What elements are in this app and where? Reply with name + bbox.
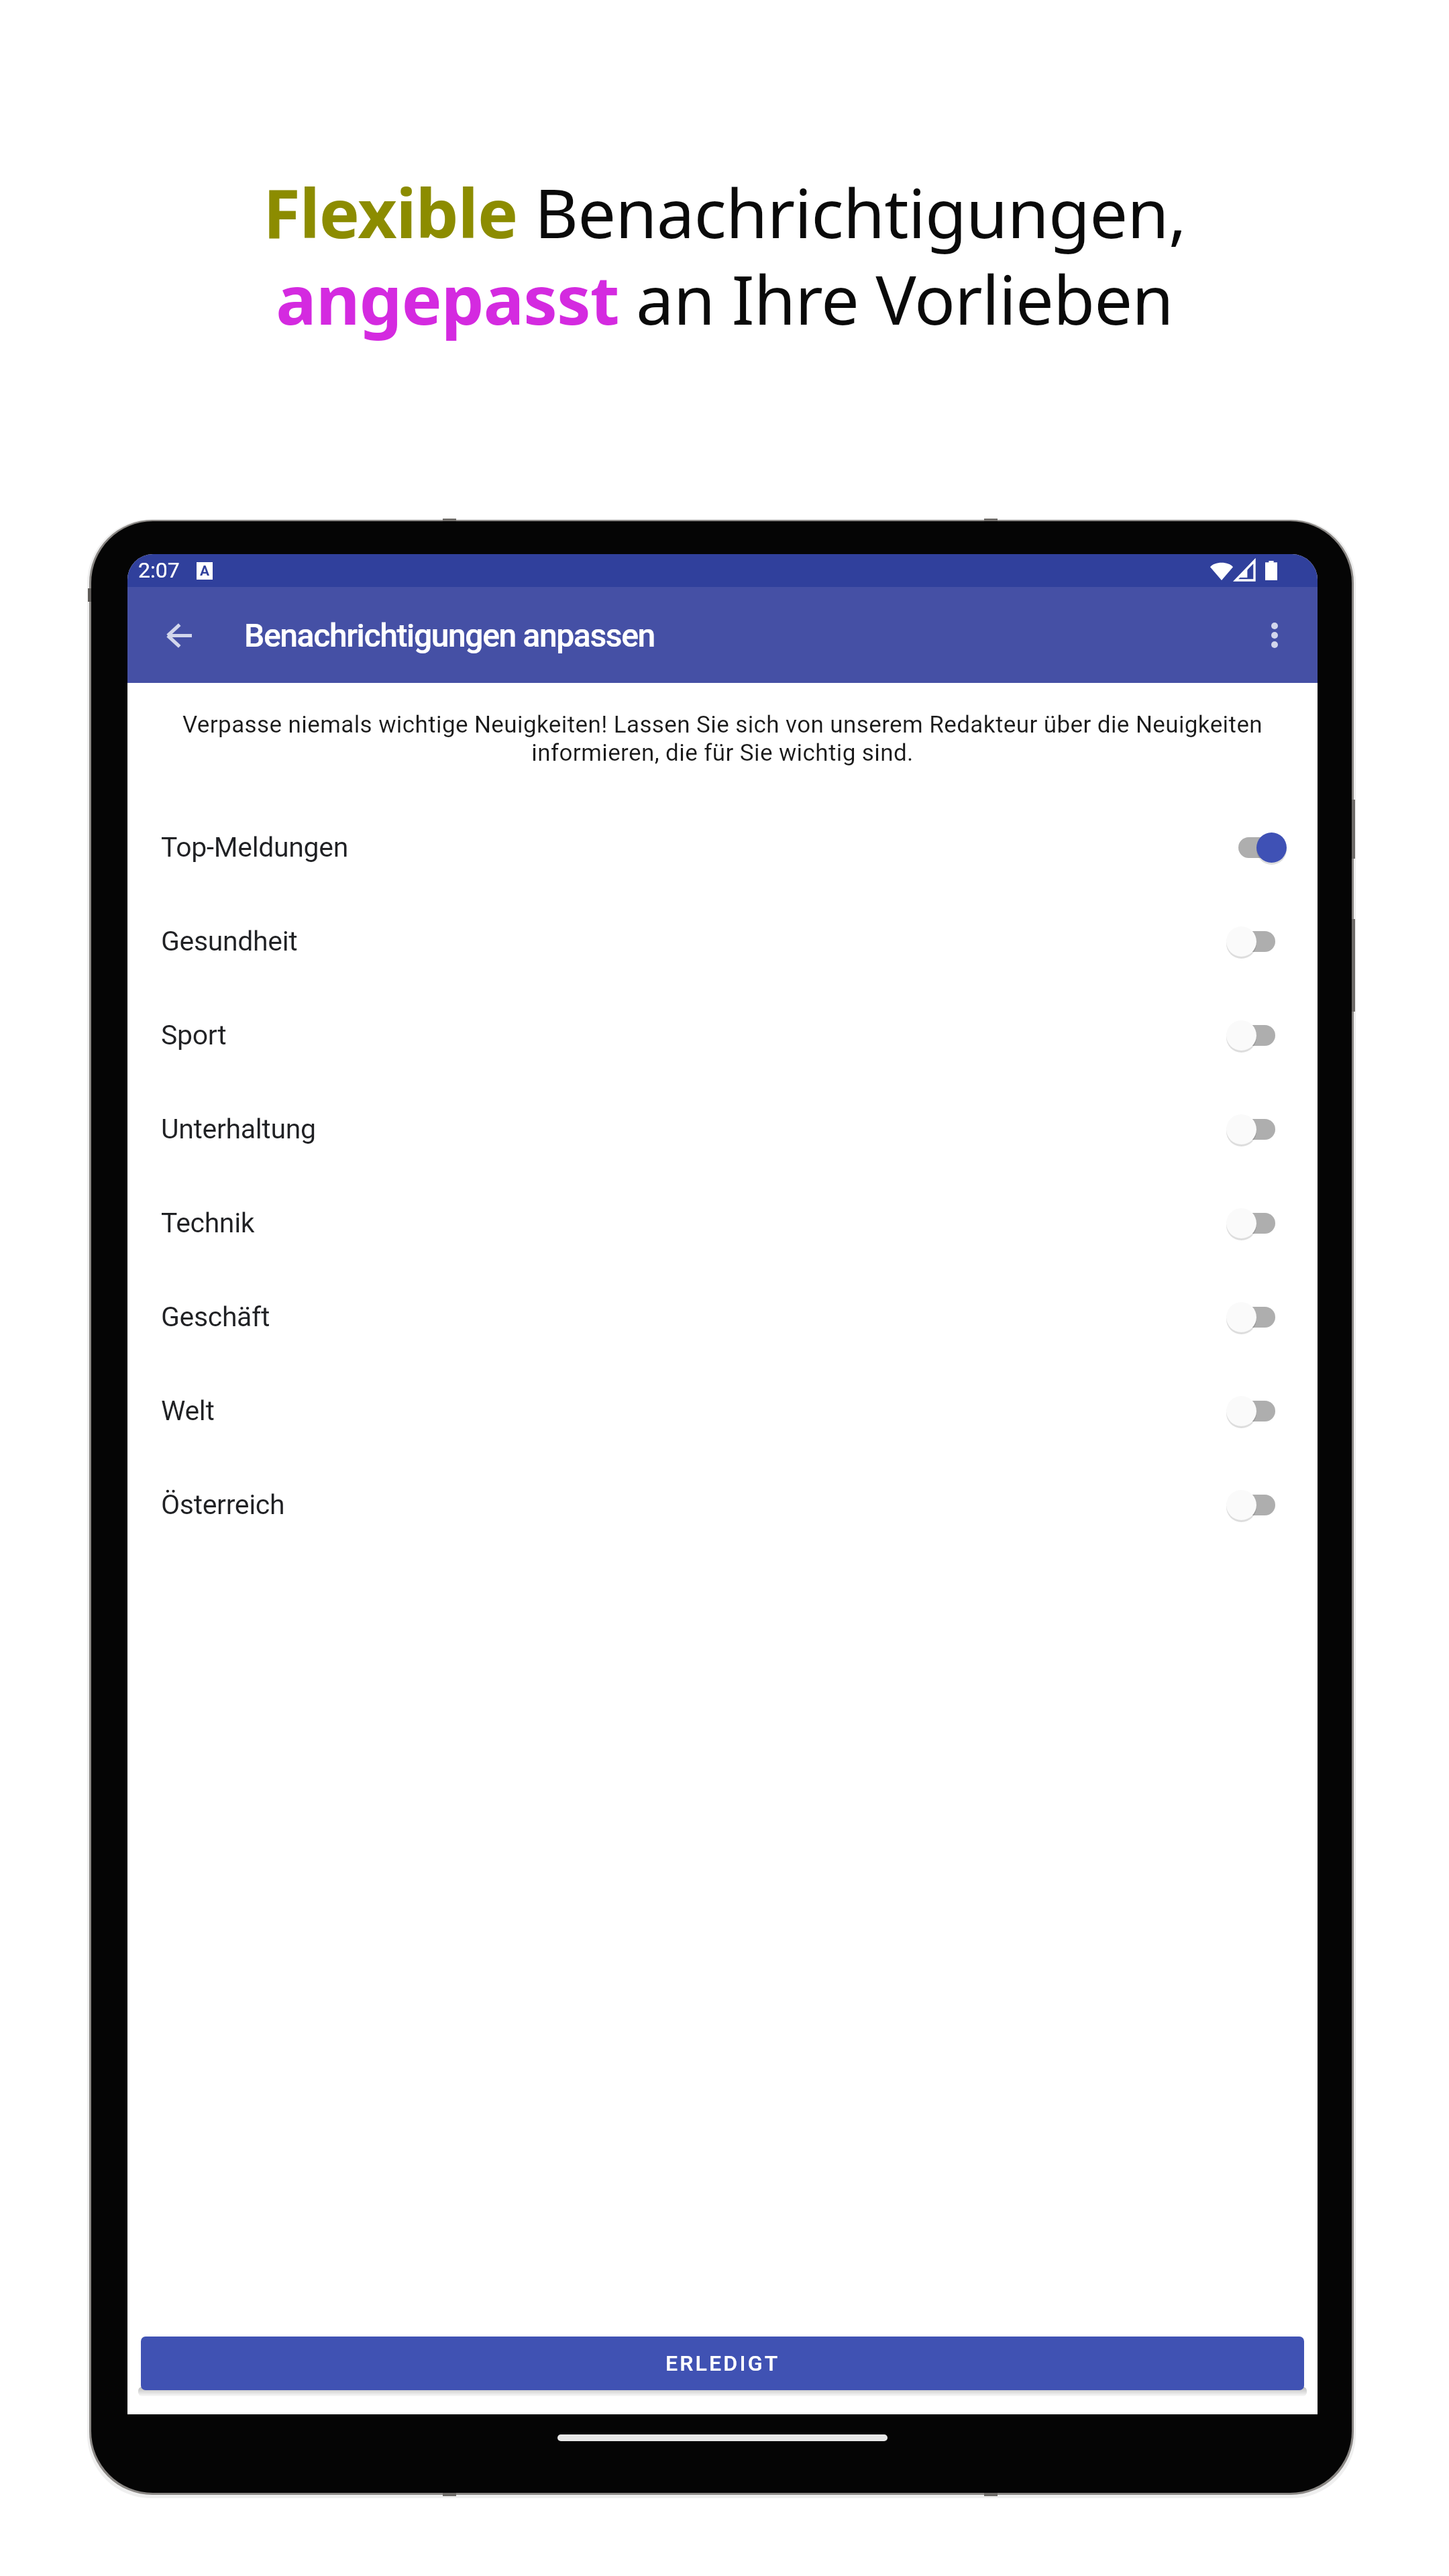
staticText: Unterhaltung [161,1113,316,1145]
button[interactable]: Sport aus [1226,1017,1287,1053]
button[interactable]: Top-Meldungen ein [1226,829,1287,865]
button[interactable]: Unterhaltung [127,1082,1318,1176]
staticText: Sport [161,1019,227,1051]
staticText: Flexible Benachrichtigungen, angepasst a… [0,166,1449,345]
staticText: Verpasse niemals wichtige Neuigkeiten! L… [174,711,1271,767]
staticText: Welt [161,1395,215,1427]
staticText: Gesundheit [161,925,298,957]
staticText: Top-Meldungen [161,831,348,863]
button[interactable]: Gesundheit [127,894,1318,988]
button[interactable]: Unterhaltung aus [1226,1111,1287,1147]
button[interactable]: Top-Meldungen [127,800,1318,894]
staticText: Benachrichtigungen anpassen [244,616,655,654]
button[interactable]: Technik [127,1176,1318,1270]
button[interactable]: Geschäft aus [1226,1299,1287,1335]
button[interactable]: Geschäft [127,1270,1318,1364]
button[interactable]: Österreich aus [1226,1487,1287,1523]
button[interactable]: Welt aus [1226,1393,1287,1429]
staticText: ERLEDIGT [665,2351,780,2376]
button[interactable]: Österreich [127,1458,1318,1552]
button[interactable]: Gesundheit aus [1226,923,1287,959]
button[interactable]: ERLEDIGT [141,2337,1304,2390]
button[interactable]: Weitere Optionen [1245,606,1304,665]
staticText: Geschäft [161,1301,270,1333]
button[interactable]: Sport [127,988,1318,1082]
button[interactable]: Zurück [150,606,209,665]
staticText: 2:07 [138,557,180,583]
staticText: Österreich [161,1489,285,1521]
button[interactable]: Technik aus [1226,1205,1287,1241]
staticText: Technik [161,1207,255,1239]
button[interactable]: Welt [127,1364,1318,1458]
staticText: A [200,563,210,580]
